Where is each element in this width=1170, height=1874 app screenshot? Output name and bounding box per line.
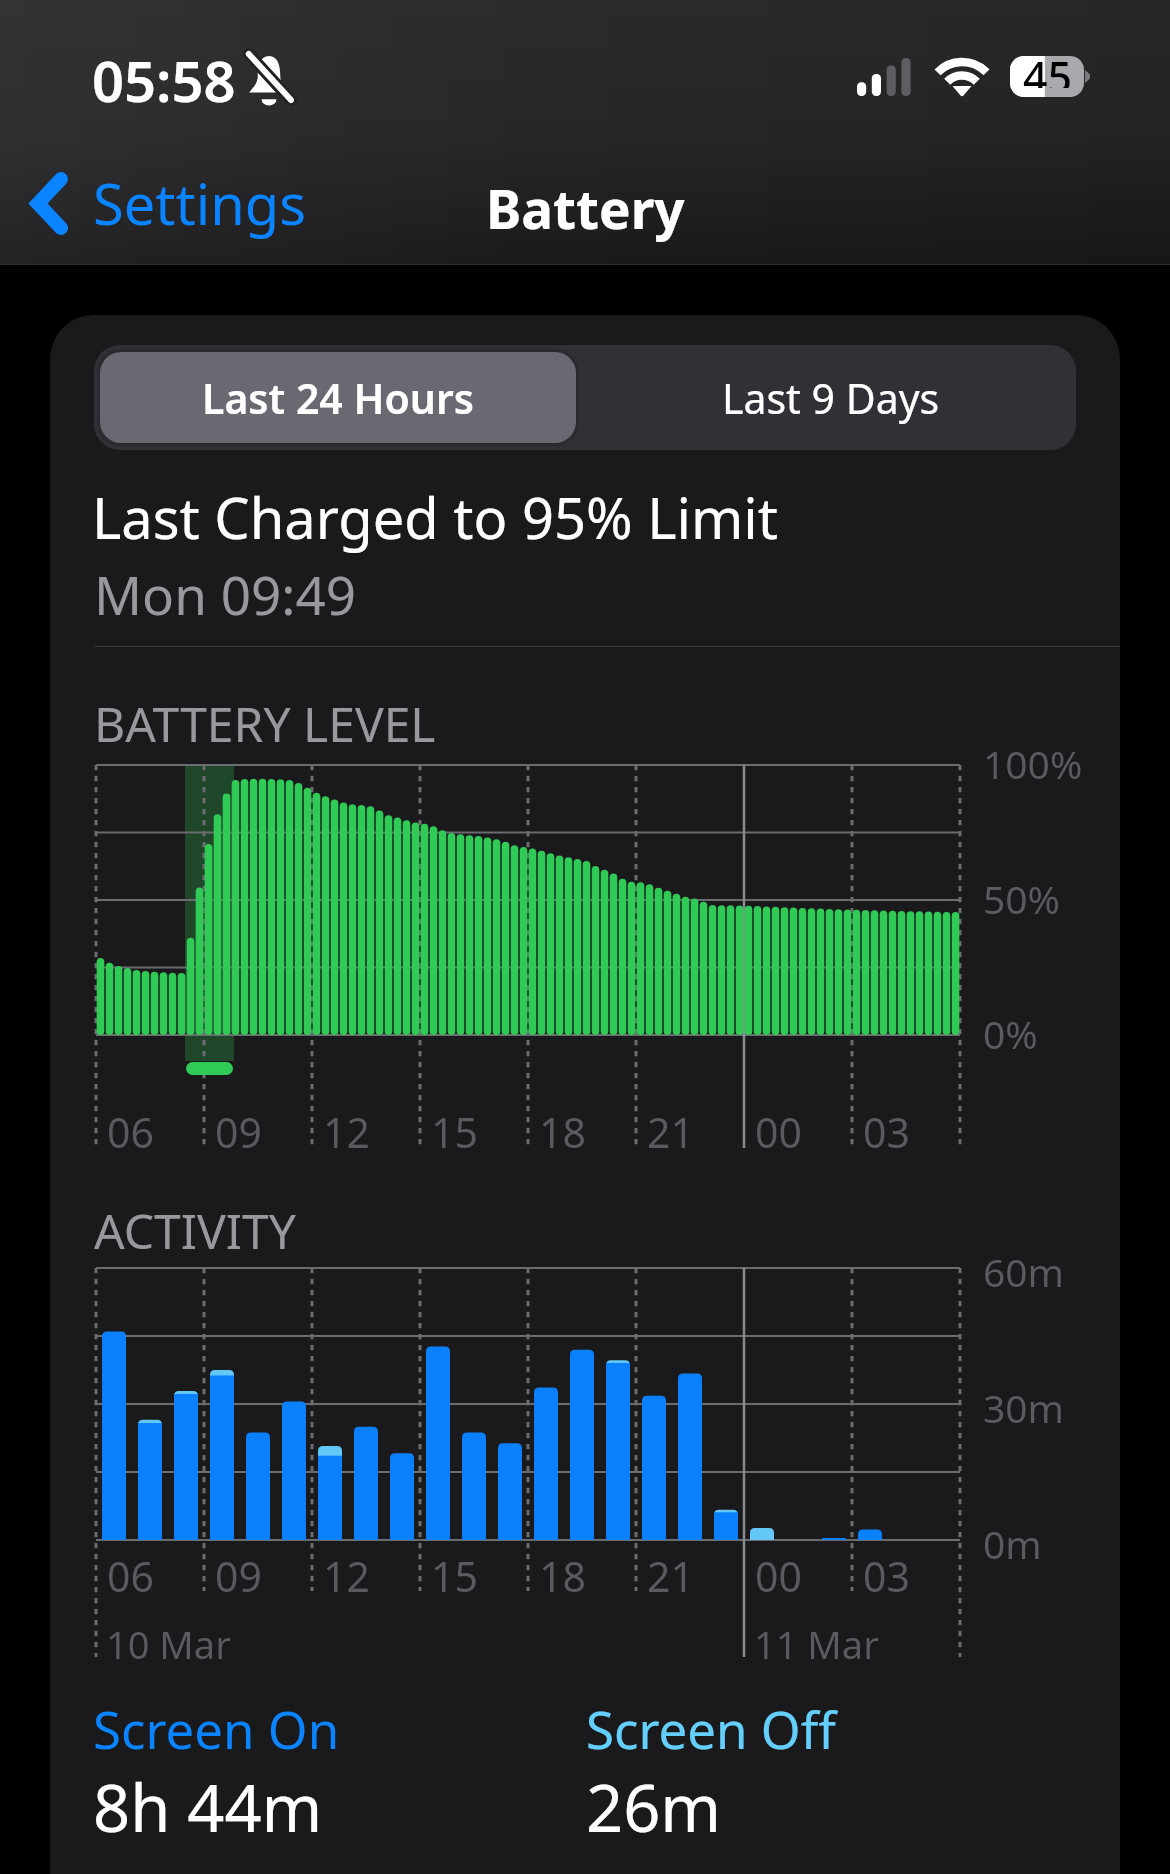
staticText: Last 9 Days	[722, 370, 940, 426]
staticText: BATTERY LEVEL	[94, 691, 436, 756]
staticText: 18	[539, 1548, 586, 1604]
staticText: 05:58	[92, 42, 236, 118]
staticText: Screen On	[93, 1694, 340, 1763]
staticText: 0%	[983, 1007, 1038, 1060]
staticText: 30m	[983, 1381, 1065, 1434]
staticText: Last 24 Hours	[202, 370, 474, 426]
staticText: 15	[431, 1548, 478, 1604]
staticText: 12	[323, 1548, 370, 1604]
staticText: 09	[215, 1104, 262, 1160]
staticText: 00	[755, 1548, 802, 1604]
staticText: 8h 44m	[93, 1763, 323, 1852]
staticText: 03	[863, 1104, 910, 1160]
staticText: 21	[647, 1104, 694, 1160]
button[interactable]: Back to Settings	[13, 159, 325, 247]
button[interactable]: Last 24 Hours	[100, 352, 576, 443]
staticText: 60m	[983, 1245, 1065, 1298]
staticText: 0m	[983, 1517, 1042, 1570]
staticText: 21	[647, 1548, 694, 1604]
staticText: 15	[431, 1104, 478, 1160]
staticText: Last Charged to 95% Limit	[92, 479, 778, 555]
staticText: 50%	[983, 872, 1061, 925]
staticText: 10 Mar	[106, 1618, 231, 1670]
staticText: Settings	[93, 165, 307, 241]
staticText: 09	[215, 1548, 262, 1604]
staticText: 06	[107, 1548, 154, 1604]
staticText: 12	[323, 1104, 370, 1160]
button[interactable]: Last 9 Days	[585, 345, 1076, 450]
staticText: 45	[1023, 47, 1073, 88]
staticText: Screen Off	[586, 1694, 836, 1763]
staticText: Battery	[486, 172, 685, 244]
staticText: 11 Mar	[754, 1618, 879, 1670]
staticText: Mon 09:49	[94, 558, 357, 630]
staticText: 26m	[586, 1763, 722, 1852]
staticText: 00	[755, 1104, 802, 1160]
staticText: ACTIVITY	[94, 1198, 296, 1263]
staticText: 18	[539, 1104, 586, 1160]
staticText: 100%	[983, 737, 1083, 790]
staticText: 06	[107, 1104, 154, 1160]
staticText: 03	[863, 1548, 910, 1604]
